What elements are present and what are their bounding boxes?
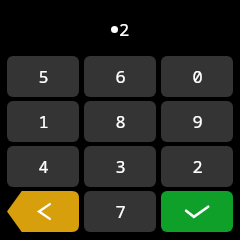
staticText: 3 [115,155,126,178]
staticText: 4 [38,155,49,178]
button[interactable]: 1 [7,101,79,142]
staticText: 9 [192,110,203,133]
staticText: 2 [192,155,203,178]
staticText: 6 [115,65,126,88]
button[interactable]: 7 [84,191,156,232]
staticText: 1 [38,110,49,133]
staticText: 7 [115,200,126,223]
button[interactable]: 0 [161,56,233,97]
button[interactable]: Confirm [161,191,233,232]
button[interactable]: 5 [7,56,79,97]
staticText: 0 [192,65,203,88]
button[interactable]: 2 [161,146,233,187]
button[interactable]: 9 [161,101,233,142]
button[interactable]: Backspace [7,191,79,232]
button[interactable]: 8 [84,101,156,142]
button[interactable]: 6 [84,56,156,97]
button[interactable]: 4 [7,146,79,187]
staticText: 2 [119,18,130,41]
staticText: 8 [115,110,126,133]
button[interactable]: 3 [84,146,156,187]
staticText: 5 [38,65,49,88]
